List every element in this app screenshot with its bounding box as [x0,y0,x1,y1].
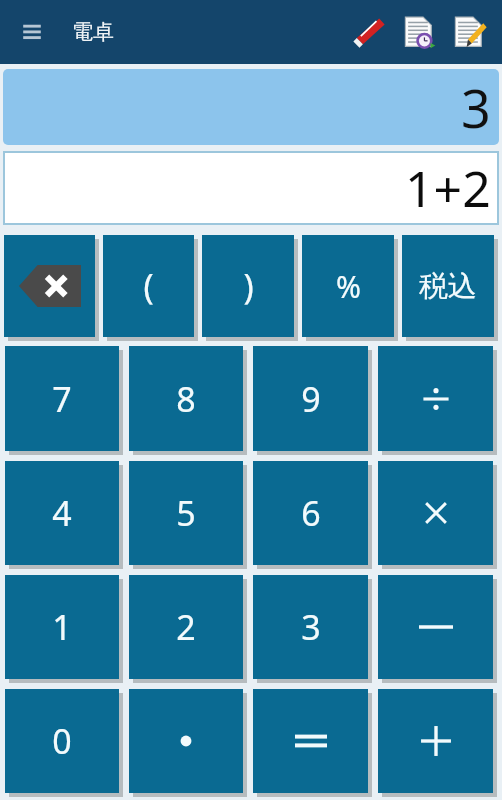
staticText: 税込 [419,268,477,305]
button[interactable]: 3 [253,575,372,683]
staticText: 3 [461,72,491,143]
staticText: 0 [52,718,72,764]
button[interactable]: Divide [378,346,497,455]
button[interactable]: ( [103,235,198,341]
button[interactable]: Memo [446,9,492,55]
staticText: 1 [52,604,72,650]
staticText: 2 [176,604,196,650]
button[interactable]: 0 [5,689,123,797]
button[interactable]: Decimal point [129,689,247,797]
button[interactable]: 1+2 [5,153,497,223]
button[interactable]: History [396,9,442,55]
button[interactable]: Minus [378,575,497,683]
button[interactable]: Multiply [378,461,497,569]
button[interactable]: 2 [129,575,247,683]
button[interactable]: 3 [3,69,499,145]
button[interactable]: 税込 [402,235,498,341]
button[interactable]: Clear [346,9,392,55]
staticText: 3 [301,604,321,650]
button[interactable]: 9 [253,346,372,455]
button[interactable]: Plus [378,689,497,797]
staticText: 6 [301,490,321,536]
button[interactable]: 1 [5,575,123,683]
staticText: 5 [176,490,196,536]
button[interactable]: Equals [253,689,372,797]
staticText: 4 [52,490,72,536]
button[interactable]: 8 [129,346,247,455]
button[interactable]: Menu [10,10,54,54]
button[interactable]: % [302,235,398,341]
staticText: 7 [52,376,72,422]
button[interactable]: 7 [5,346,123,455]
button[interactable]: Backspace [4,235,99,341]
button[interactable]: 5 [129,461,247,569]
button[interactable]: 4 [5,461,123,569]
button[interactable]: 6 [253,461,372,569]
staticText: 8 [176,376,196,422]
staticText: ) [243,263,254,309]
staticText: 9 [301,376,321,422]
staticText: ( [143,263,154,309]
staticText: % [336,266,361,307]
staticText: 電卓 [72,19,114,45]
button[interactable]: ) [202,235,298,341]
staticText: 1+2 [405,154,491,222]
